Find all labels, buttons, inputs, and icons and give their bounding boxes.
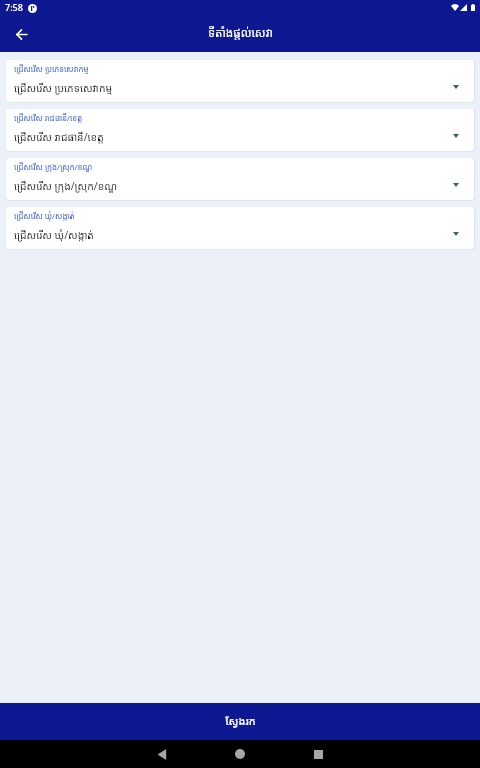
staticText: ជ្រើសរើស រាជធានី/ខេត្ត — [14, 113, 83, 124]
button[interactable]: ជ្រើសរើស ឃុំ/សង្កាត់ — [6, 207, 474, 249]
button[interactable]: Recent apps — [302, 740, 334, 768]
staticText: ជ្រើសរើស ឃុំ/សង្កាត់ — [14, 228, 94, 242]
staticText: ស្វែងរក — [225, 714, 256, 728]
button[interactable]: ស្វែងរក — [0, 703, 480, 740]
staticText: ជ្រើសរើស ក្រុង/ស្រុក/ខណ្ឌ — [14, 179, 118, 193]
staticText: ជ្រើសរើស ប្រភេទសេវាកម្ម — [14, 81, 113, 95]
button[interactable]: Home — [224, 740, 256, 768]
staticText: ជ្រើសរើស ប្រភេទសេវាកម្ម — [14, 64, 89, 75]
button[interactable]: Back — [146, 740, 178, 768]
button[interactable]: ជ្រើសរើស រាជធានី/ខេត្ត — [6, 109, 474, 151]
staticText: ទីតាំងផ្តល់សេវា — [208, 24, 273, 40]
button[interactable]: ជ្រើសរើស ក្រុង/ស្រុក/ខណ្ឌ — [6, 158, 474, 200]
button[interactable]: ជ្រើសរើស ប្រភេទសេវាកម្ម — [6, 60, 474, 102]
staticText: ជ្រើសរើស ឃុំ/សង្កាត់ — [14, 211, 75, 222]
staticText: 7:58 — [5, 1, 23, 13]
button[interactable]: Back — [5, 18, 37, 50]
staticText: ជ្រើសរើស ក្រុង/ស្រុក/ខណ្ឌ — [14, 162, 93, 173]
staticText: ជ្រើសរើស រាជធានី/ខេត្ត — [14, 130, 104, 144]
